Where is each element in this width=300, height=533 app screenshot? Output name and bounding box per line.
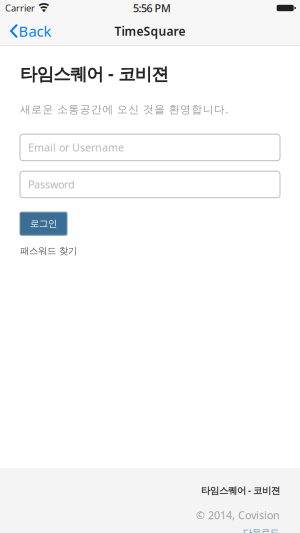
button[interactable]: 패스워드 찾기: [20, 241, 77, 261]
button[interactable]: 다운로드: [243, 527, 279, 533]
button[interactable]: Back: [0, 16, 60, 46]
staticText: 다운로드: [243, 527, 279, 533]
staticText: 새로운 소통공간에 오신 것을 환영합니다.: [20, 102, 228, 116]
staticText: Carrier: [5, 2, 35, 14]
staticText: 로그인: [30, 218, 57, 229]
staticText: Email or Username: [28, 140, 124, 155]
button[interactable]: 로그인: [20, 212, 67, 235]
staticText: Password: [28, 177, 75, 192]
staticText: Back: [19, 21, 52, 41]
staticText: 5:56 PM: [133, 1, 171, 15]
staticText: 타임스퀘어 - 코비젼: [20, 62, 168, 85]
staticText: © 2014, Covision: [196, 508, 280, 522]
staticText: 패스워드 찾기: [20, 245, 77, 257]
staticText: 타임스퀘어 - 코비젼: [201, 484, 280, 496]
staticText: TimeSquare: [114, 23, 185, 39]
